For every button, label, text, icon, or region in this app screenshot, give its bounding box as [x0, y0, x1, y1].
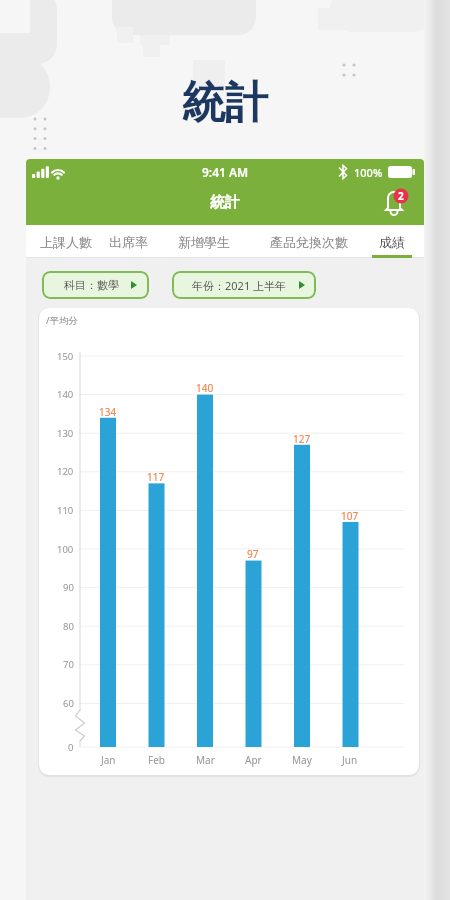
staticText: 107: [341, 509, 359, 523]
button[interactable]: 成績: [368, 225, 416, 258]
staticText: 0: [68, 741, 74, 754]
staticText: 統計: [182, 76, 268, 130]
staticText: 80: [63, 620, 74, 633]
staticText: Jun: [342, 753, 358, 767]
button[interactable]: 科目：數學: [42, 271, 149, 299]
staticText: Apr: [245, 753, 262, 767]
staticText: Jan: [101, 753, 116, 767]
staticText: 140: [57, 388, 74, 401]
staticText: 100%: [354, 165, 383, 180]
staticText: May: [292, 753, 312, 767]
staticText: 出席率: [109, 234, 148, 250]
staticText: 130: [57, 427, 74, 440]
staticText: 9:41 AM: [202, 164, 249, 180]
button[interactable]: 產品兌換次數: [261, 225, 357, 258]
button[interactable]: 上課人數: [31, 225, 101, 258]
staticText: 97: [247, 547, 259, 561]
staticText: 科目：數學: [64, 278, 119, 292]
staticText: Mar: [196, 753, 215, 767]
staticText: /平均分: [46, 314, 79, 327]
staticText: 產品兌換次數: [270, 234, 348, 250]
staticText: 140: [196, 381, 214, 395]
staticText: 120: [57, 465, 74, 478]
staticText: 100: [57, 543, 74, 556]
button[interactable]: 2: [378, 186, 412, 220]
staticText: 新增學生: [178, 234, 230, 250]
staticText: 134: [99, 405, 117, 419]
staticText: 上課人數: [40, 234, 92, 250]
staticText: 2: [398, 189, 404, 203]
button[interactable]: 新增學生: [169, 225, 239, 258]
button[interactable]: 年份：2021 上半年: [172, 271, 316, 299]
staticText: 117: [147, 470, 165, 484]
staticText: 成績: [379, 234, 405, 250]
staticText: 127: [293, 432, 311, 446]
staticText: 150: [57, 350, 74, 363]
staticText: Feb: [148, 753, 165, 767]
staticText: 60: [63, 697, 74, 710]
staticText: 90: [63, 581, 74, 594]
staticText: 110: [57, 504, 74, 517]
staticText: 年份：2021 上半年: [192, 278, 287, 293]
button[interactable]: 出席率: [100, 225, 156, 258]
staticText: 70: [63, 658, 74, 671]
staticText: 統計: [210, 193, 240, 212]
